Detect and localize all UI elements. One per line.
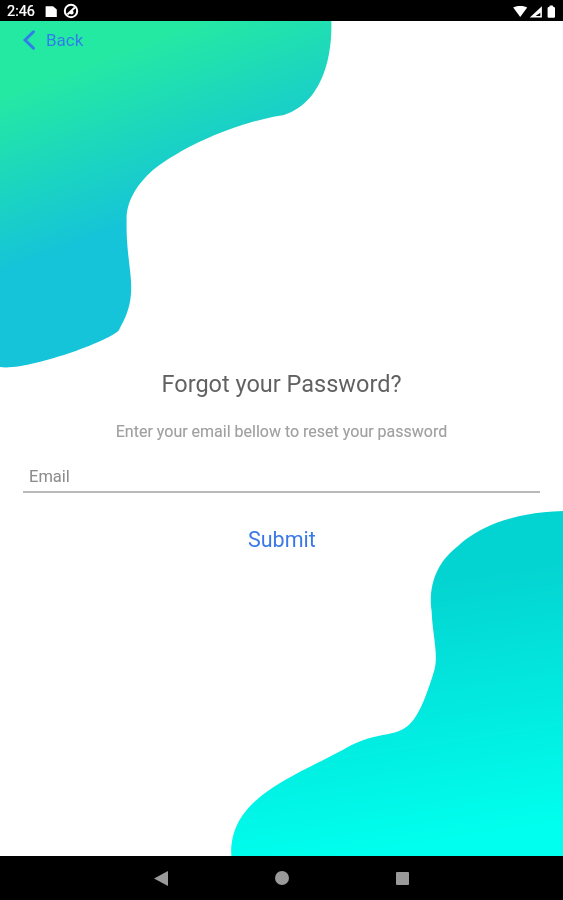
staticText: Email: [29, 467, 70, 486]
button[interactable]: Recents: [387, 863, 417, 893]
button[interactable]: Back: [146, 863, 176, 893]
staticText: Forgot your Password?: [0, 370, 563, 398]
button[interactable]: Home: [267, 863, 297, 893]
staticText: Enter your email bellow to reset your pa…: [0, 422, 563, 441]
button[interactable]: Back: [20, 27, 88, 53]
staticText: 2:46: [7, 3, 35, 20]
staticText: Back: [46, 30, 84, 50]
button[interactable]: Email: [23, 459, 540, 493]
staticText: Submit: [248, 527, 316, 552]
button[interactable]: Submit: [230, 521, 334, 558]
